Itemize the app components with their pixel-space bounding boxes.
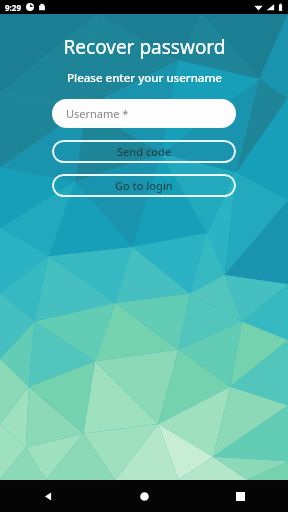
button[interactable]: Send code	[52, 140, 236, 163]
staticText: Username *	[66, 106, 129, 121]
staticText: Go to login	[115, 178, 173, 193]
staticText: 9:29	[5, 2, 21, 13]
button[interactable]: Username *	[52, 99, 236, 128]
button[interactable]: Back	[0, 480, 96, 512]
staticText: Please enter your username	[67, 70, 222, 86]
staticText: Send code	[117, 144, 172, 159]
staticText: Recover password	[63, 34, 226, 60]
button[interactable]: Go to login	[52, 174, 236, 197]
button[interactable]: Home	[96, 480, 192, 512]
button[interactable]: Recent apps	[192, 480, 288, 512]
